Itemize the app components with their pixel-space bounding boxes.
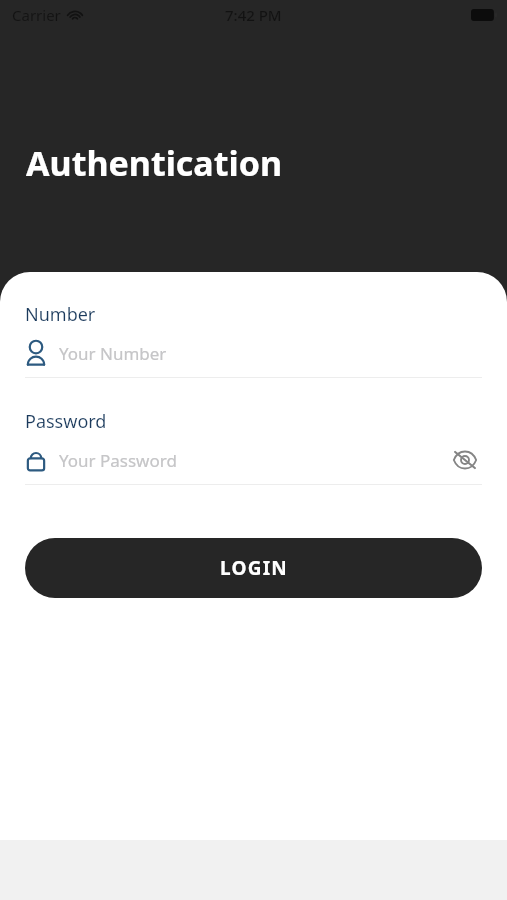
button[interactable]: Your Number <box>25 337 482 369</box>
staticText: Your Password <box>59 449 177 472</box>
button[interactable]: LOGIN <box>25 538 482 598</box>
staticText: LOGIN <box>220 555 288 581</box>
button[interactable]: Your Password <box>25 444 448 476</box>
staticText: 7:42 PM <box>225 5 282 25</box>
staticText: Number <box>25 302 96 327</box>
staticText: Carrier <box>12 5 61 25</box>
staticText: Authentication <box>26 140 282 186</box>
staticText: Your Number <box>59 342 167 365</box>
button[interactable]: Show password <box>448 444 482 476</box>
staticText: Password <box>25 409 107 434</box>
